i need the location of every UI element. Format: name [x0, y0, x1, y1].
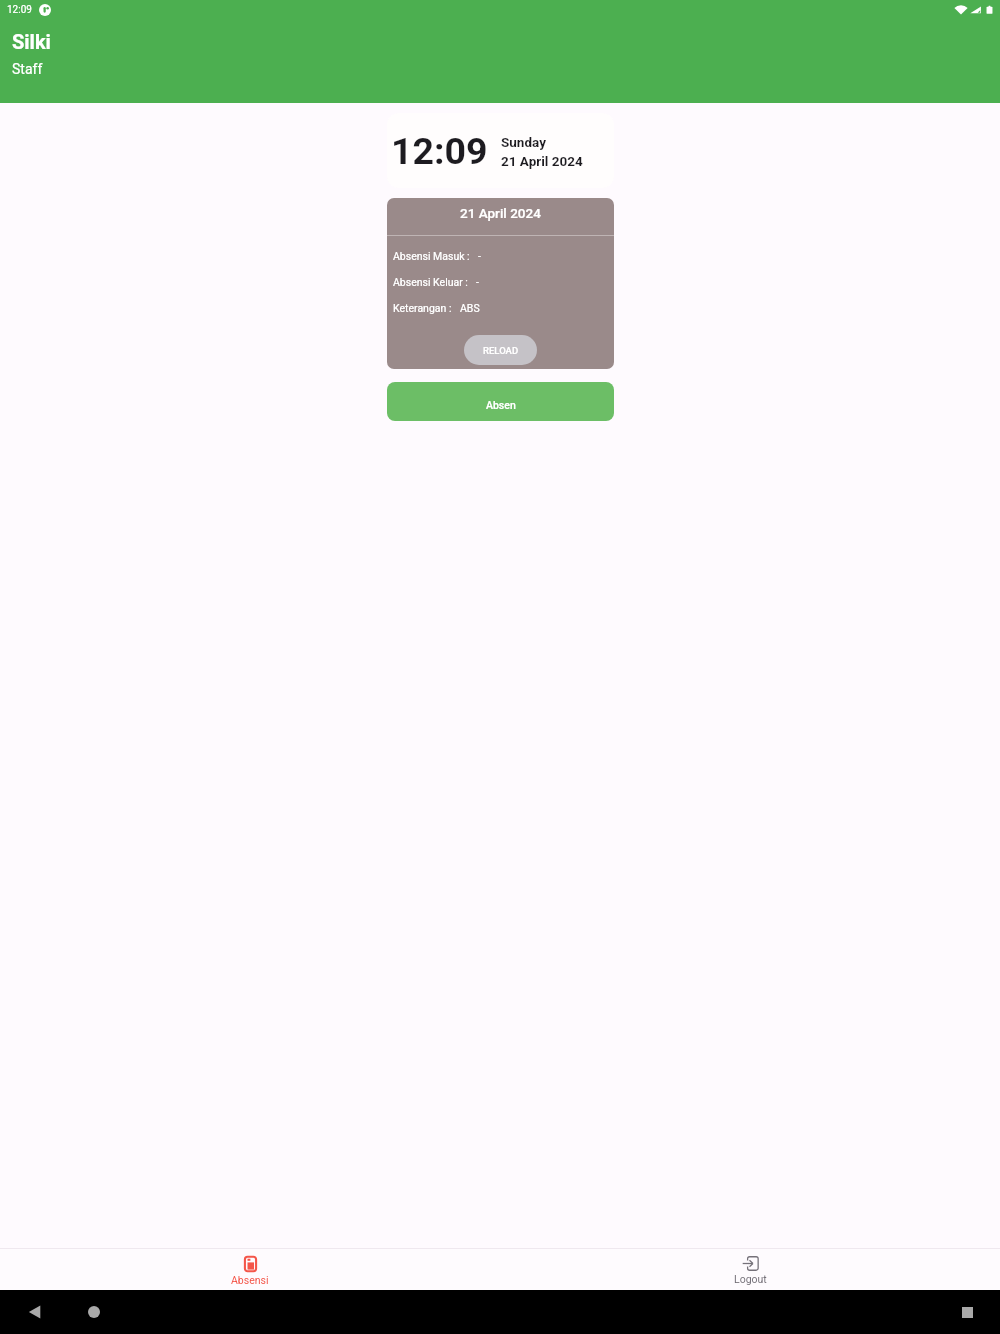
staticText: 12:09 [7, 4, 32, 16]
staticText: Absensi [231, 1274, 269, 1286]
staticText: 21 April 2024 [501, 153, 583, 169]
staticText: Sunday [501, 134, 546, 150]
staticText: Silki [12, 30, 51, 53]
button[interactable]: Absensi [0, 1249, 500, 1290]
staticText: Absensi Masuk : [393, 250, 470, 262]
button[interactable]: Back [26, 1303, 44, 1321]
button[interactable]: Recent apps [958, 1303, 976, 1321]
button[interactable]: RELOAD [464, 335, 537, 365]
staticText: Absensi Keluar : [393, 276, 468, 288]
button[interactable]: Home [85, 1303, 103, 1321]
staticText: Absen [486, 399, 516, 411]
staticText: Keterangan : [393, 302, 452, 314]
staticText: 12:09 [391, 129, 488, 173]
staticText: - [478, 250, 481, 262]
staticText: RELOAD [483, 345, 519, 356]
staticText: Logout [734, 1273, 767, 1285]
button[interactable]: Absen [387, 382, 614, 421]
staticText: Staff [12, 61, 43, 77]
button[interactable]: Logout [500, 1249, 1000, 1290]
staticText: ABS [460, 302, 480, 314]
staticText: - [476, 276, 479, 288]
staticText: 21 April 2024 [460, 205, 541, 221]
